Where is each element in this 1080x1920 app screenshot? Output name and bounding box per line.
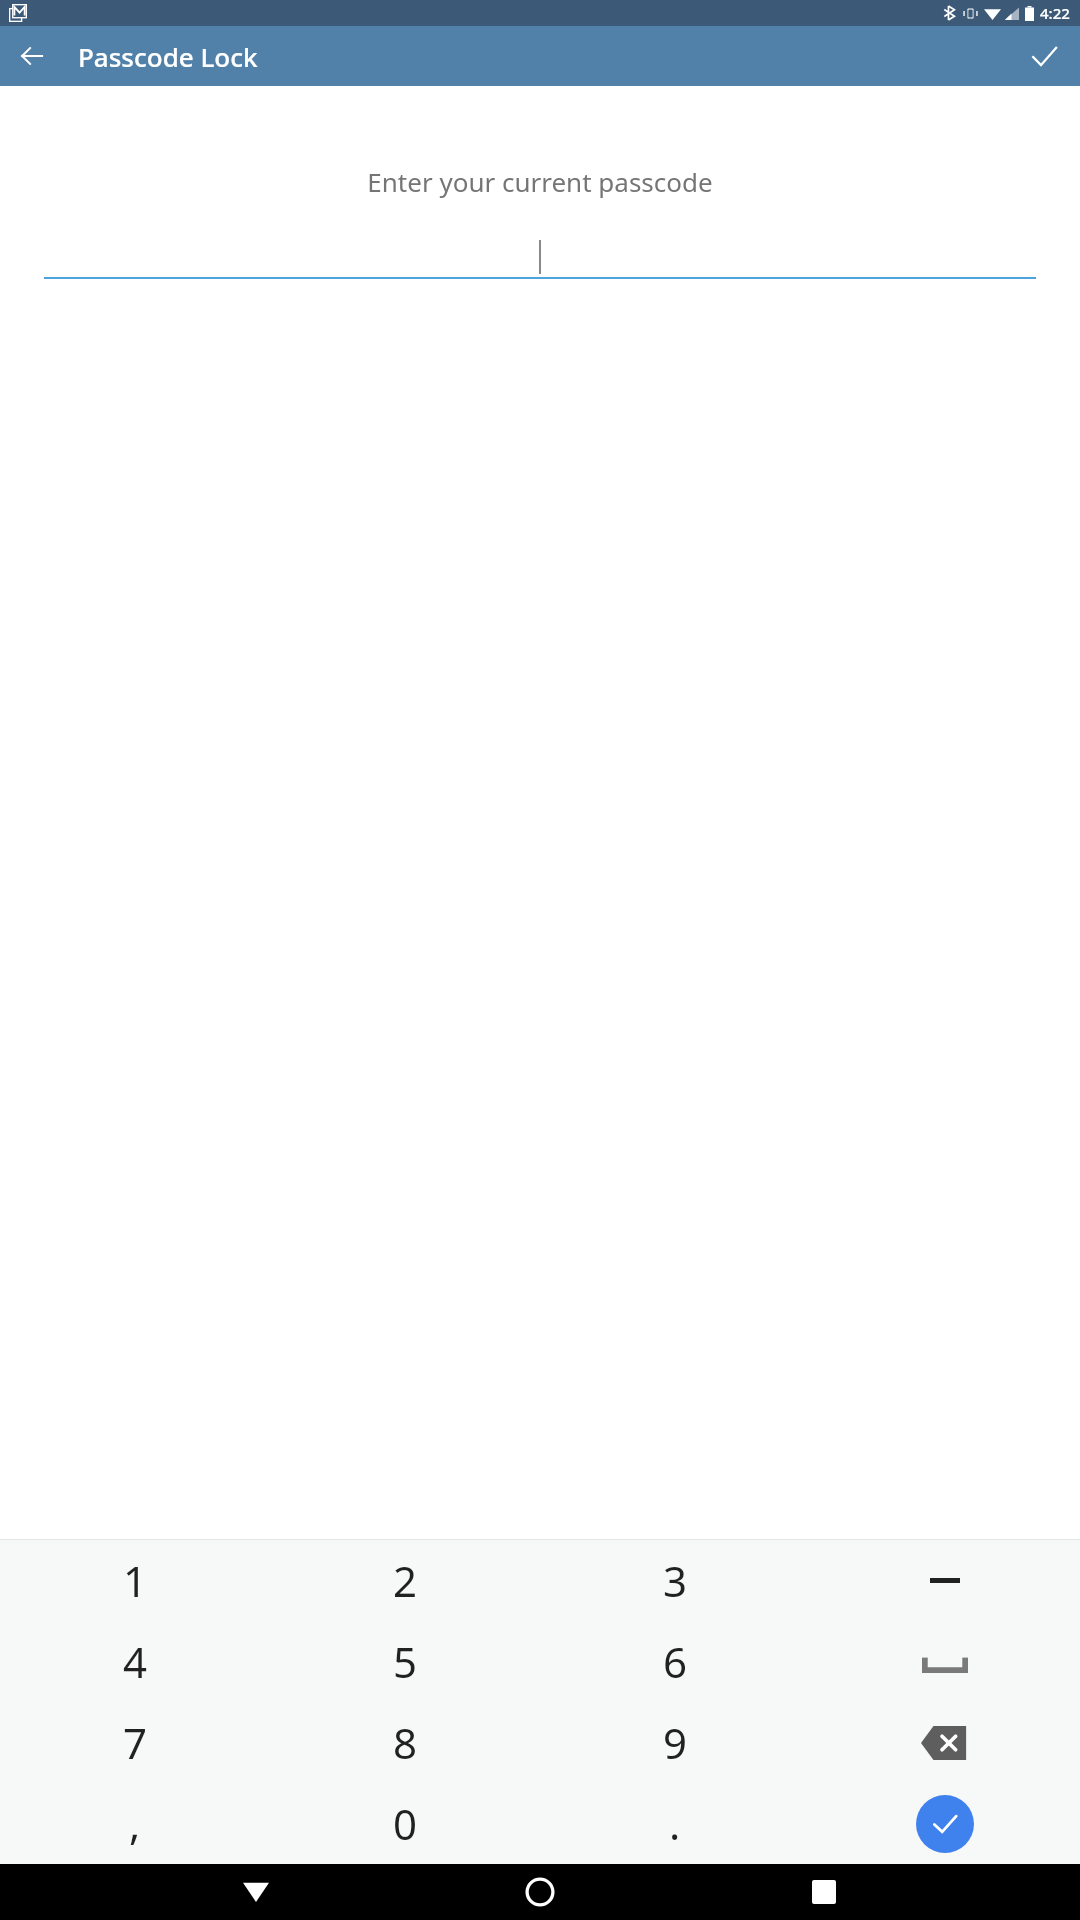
button[interactable]: Recents	[796, 1864, 852, 1920]
button[interactable]: 9	[540, 1702, 810, 1783]
button[interactable]: 4	[0, 1621, 270, 1702]
button[interactable]: 6	[540, 1621, 810, 1702]
staticText: 4:22	[1040, 3, 1070, 23]
staticText: 3	[663, 1552, 688, 1609]
staticText: 4	[123, 1633, 148, 1690]
button[interactable]: Back	[8, 32, 56, 80]
button[interactable]: Home	[512, 1864, 568, 1920]
staticText: Passcode Lock	[78, 39, 258, 74]
button[interactable]: 2	[270, 1540, 540, 1621]
staticText: 0	[393, 1795, 418, 1852]
staticText: 5	[393, 1633, 418, 1690]
staticText: ,	[129, 1795, 141, 1852]
button[interactable]: Backspace	[810, 1702, 1080, 1783]
staticText: 9	[663, 1714, 688, 1771]
staticText: Enter your current passcode	[367, 164, 713, 199]
button[interactable]: Done	[1018, 30, 1070, 82]
button[interactable]: 1	[0, 1540, 270, 1621]
button[interactable]: ,	[0, 1783, 270, 1864]
button[interactable]: 5	[270, 1621, 540, 1702]
staticText: 8	[393, 1714, 418, 1771]
button[interactable]: Back	[228, 1864, 284, 1920]
button[interactable]: .	[540, 1783, 810, 1864]
button[interactable]: Space	[810, 1621, 1080, 1702]
staticText: .	[669, 1795, 681, 1852]
button[interactable]: 0	[270, 1783, 540, 1864]
button[interactable]: 7	[0, 1702, 270, 1783]
staticText: 7	[123, 1714, 148, 1771]
staticText: 1	[123, 1552, 148, 1609]
button[interactable]: 8	[270, 1702, 540, 1783]
staticText: 6	[663, 1633, 688, 1690]
button[interactable]	[44, 237, 1036, 277]
staticText: 2	[393, 1552, 418, 1609]
button[interactable]: Enter	[810, 1783, 1080, 1864]
button[interactable]: Dash	[810, 1540, 1080, 1621]
button[interactable]: 3	[540, 1540, 810, 1621]
